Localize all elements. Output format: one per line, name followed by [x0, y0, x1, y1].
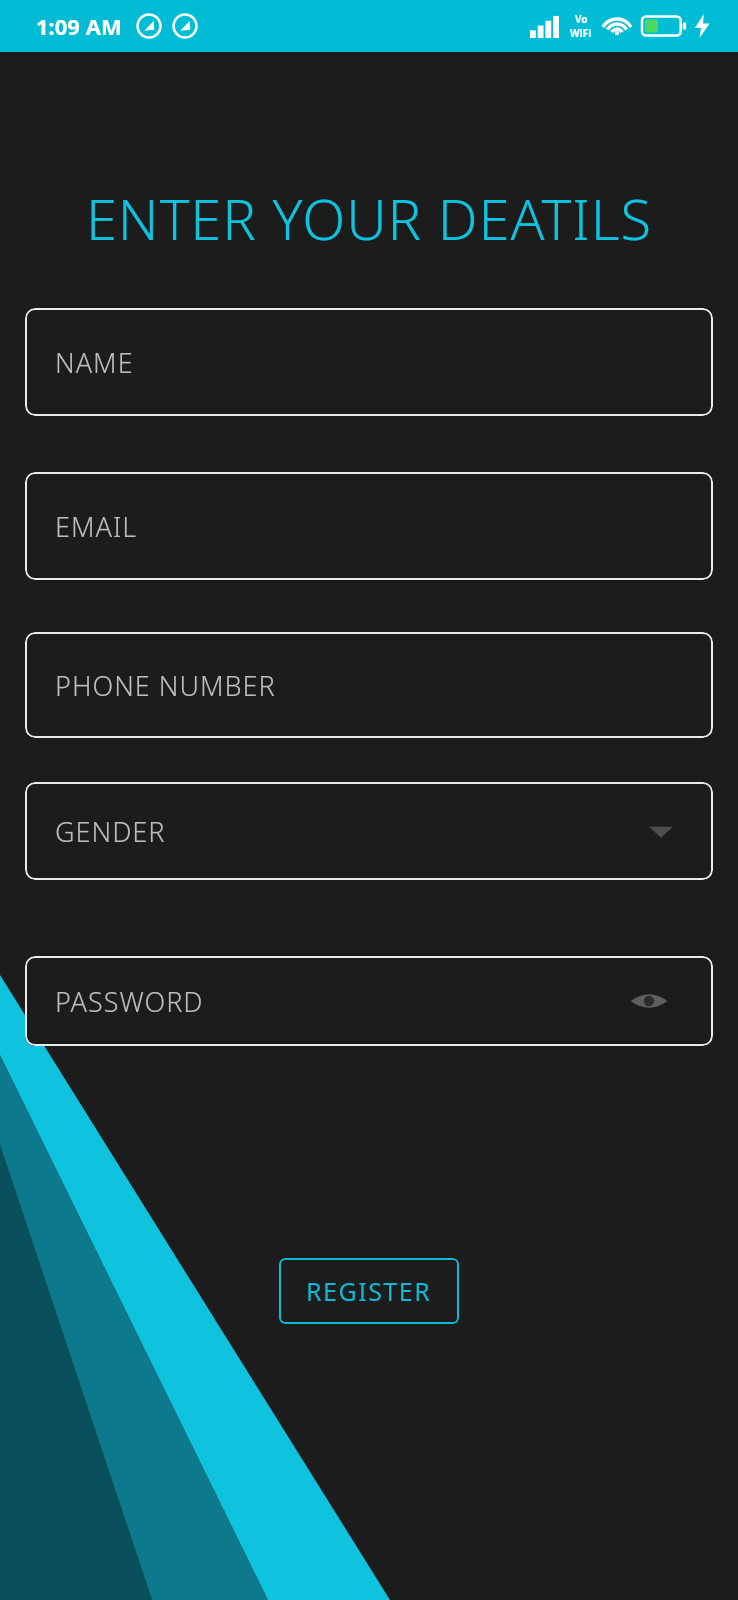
staticText: PASSWORD	[55, 983, 204, 1020]
button[interactable]: EMAIL	[25, 472, 713, 580]
button[interactable]: GENDER	[25, 782, 713, 880]
staticText: REGISTER	[306, 1274, 432, 1308]
staticText: WiFi	[570, 26, 592, 40]
button[interactable]: NAME	[25, 308, 713, 416]
staticText: NAME	[55, 344, 134, 381]
staticText: GENDER	[55, 813, 166, 850]
button[interactable]: PHONE NUMBER	[25, 632, 713, 738]
staticText: EMAIL	[55, 508, 138, 545]
staticText: PHONE NUMBER	[55, 667, 276, 704]
staticText: Vo	[575, 12, 588, 26]
button[interactable]: REGISTER	[279, 1258, 459, 1324]
button[interactable]: PASSWORD	[25, 956, 713, 1046]
button[interactable]: Open gender dropdown	[645, 815, 677, 847]
button[interactable]: Show password	[627, 979, 671, 1023]
staticText: ENTER YOUR DEATILS	[0, 180, 738, 256]
staticText: 1:09 AM	[36, 11, 122, 41]
